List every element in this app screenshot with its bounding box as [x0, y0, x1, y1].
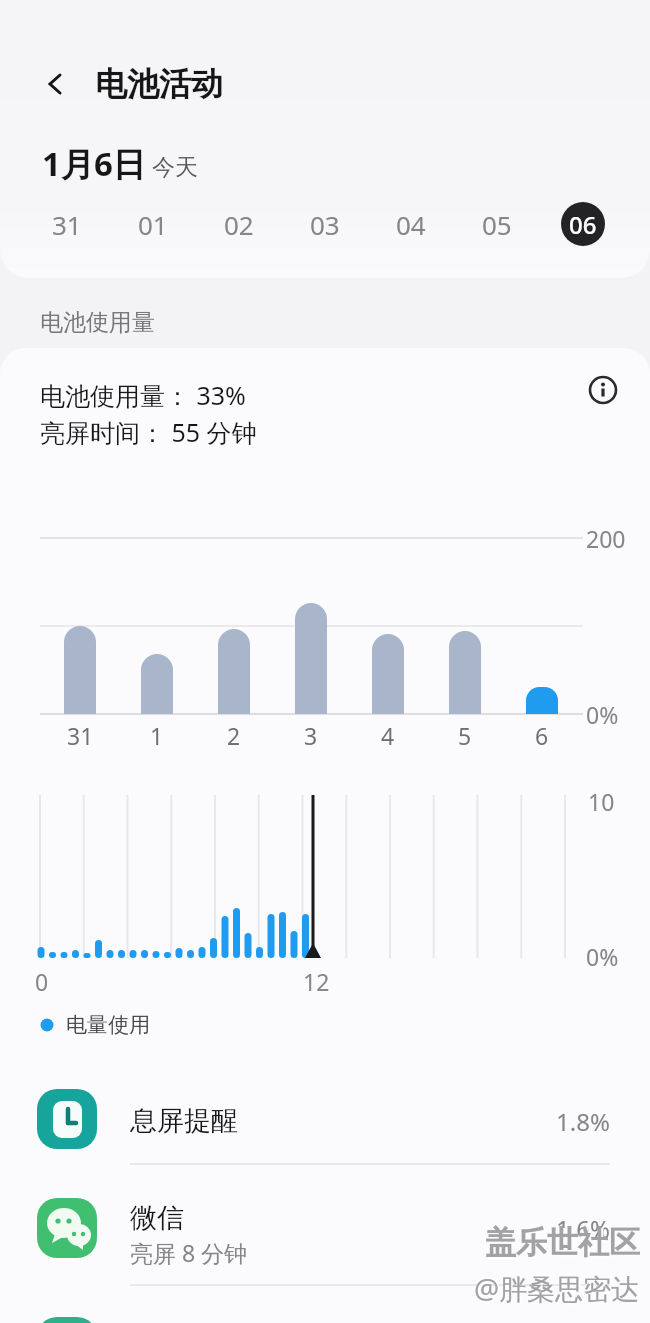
button[interactable]	[30, 58, 82, 110]
staticText: 电池活动	[95, 64, 223, 104]
button[interactable]: 02	[196, 194, 282, 254]
staticText: 亮屏 8 分钟	[130, 1237, 248, 1268]
staticText: 电池使用量	[40, 308, 155, 337]
staticText: 04	[396, 207, 426, 242]
button[interactable]: 31	[24, 194, 110, 254]
staticText: 4	[381, 720, 395, 751]
staticText: @胖桑思密达	[474, 1269, 640, 1307]
staticText: 02	[224, 207, 254, 242]
staticText: 05	[482, 207, 512, 242]
staticText: 200	[586, 523, 626, 554]
staticText: 1	[150, 720, 164, 751]
staticText: @胖桑思密达	[476, 1271, 642, 1309]
button[interactable]: 05	[454, 194, 540, 254]
staticText: 0	[35, 966, 49, 997]
staticText: 12	[303, 966, 330, 997]
staticText: 电池使用量： 33%	[40, 378, 246, 412]
staticText: 1.6%	[556, 1212, 610, 1245]
button[interactable]: 03	[282, 194, 368, 254]
staticText: 电量使用	[66, 1012, 150, 1038]
staticText: 31	[67, 720, 94, 751]
staticText: 微信	[130, 1201, 184, 1235]
button[interactable]: 微信	[0, 1190, 650, 1290]
staticText: 06	[569, 208, 597, 241]
button[interactable]: 04	[368, 194, 454, 254]
staticText: 今天	[152, 153, 198, 182]
staticText: 03	[310, 207, 340, 242]
button[interactable]: 01	[110, 194, 196, 254]
staticText: 盖乐世社区	[485, 1223, 640, 1262]
staticText: 1.8%	[556, 1105, 610, 1138]
staticText: 0%	[586, 699, 619, 730]
staticText: 0%	[586, 941, 619, 972]
button[interactable]: 06	[561, 202, 605, 246]
staticText: 亮屏时间： 55 分钟	[40, 415, 257, 449]
staticText: 5	[458, 720, 472, 751]
staticText: 息屏提醒	[130, 1104, 238, 1138]
staticText: 3	[304, 720, 318, 751]
staticText: 31	[52, 207, 82, 242]
staticText: 1月6日	[42, 141, 146, 186]
staticText: 2	[227, 720, 241, 751]
button[interactable]: 息屏提醒	[0, 1079, 650, 1164]
staticText: 01	[138, 207, 168, 242]
button[interactable]	[581, 368, 625, 412]
staticText: 10	[588, 786, 615, 817]
staticText: 6	[535, 720, 549, 751]
staticText: 盖乐世社区	[487, 1225, 642, 1264]
